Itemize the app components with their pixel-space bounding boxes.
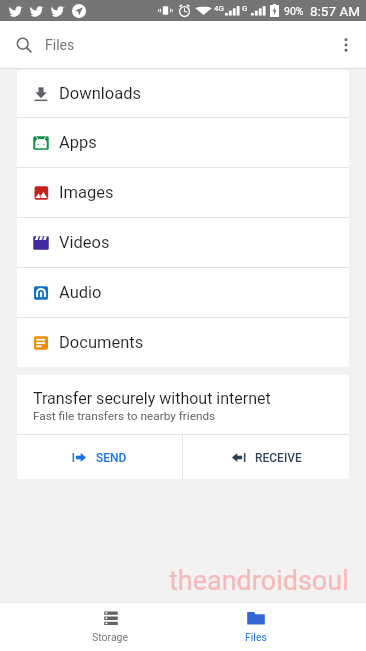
button[interactable]: Files xyxy=(183,602,329,651)
staticText: Files xyxy=(245,631,267,643)
staticText: Files xyxy=(45,37,75,53)
button[interactable]: Audio xyxy=(17,268,349,317)
staticText: RECEIVE xyxy=(255,451,302,465)
button[interactable]: Videos xyxy=(17,218,349,267)
button[interactable]: Downloads xyxy=(17,70,349,117)
button[interactable]: Search xyxy=(7,28,41,62)
staticText: Storage xyxy=(92,631,129,643)
button[interactable]: Apps xyxy=(17,118,349,167)
staticText: Downloads xyxy=(59,84,141,103)
staticText: G xyxy=(242,4,248,13)
button[interactable]: Storage xyxy=(37,602,183,651)
staticText: Videos xyxy=(59,233,110,252)
button[interactable]: RECEIVE xyxy=(183,435,349,479)
staticText: 4G xyxy=(214,4,224,13)
button[interactable]: Images xyxy=(17,168,349,217)
staticText: Images xyxy=(59,183,114,202)
staticText: Transfer securely without internet xyxy=(33,389,271,408)
staticText: SEND xyxy=(96,451,127,465)
staticText: Apps xyxy=(59,133,97,152)
staticText: theandroidsoul xyxy=(169,565,349,597)
staticText: Audio xyxy=(59,283,102,302)
staticText: 8:57 AM xyxy=(310,3,360,19)
staticText: Documents xyxy=(59,333,144,352)
staticText: 90% xyxy=(284,5,304,17)
button[interactable]: Documents xyxy=(17,318,349,367)
button[interactable]: SEND xyxy=(17,435,182,479)
staticText: Fast file transfers to nearby friends xyxy=(33,409,216,423)
button[interactable]: More options xyxy=(329,28,363,62)
